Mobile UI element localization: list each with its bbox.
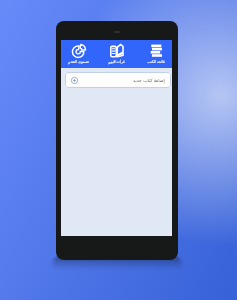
button[interactable]: قائمة الكتب [138, 40, 173, 68]
staticText: قائمة الكتب [147, 59, 165, 64]
button[interactable]: إضافة كتاب جديد [65, 72, 171, 88]
button[interactable]: قرأت اليوم [99, 40, 134, 68]
staticText: مستوى التقدم [68, 59, 89, 64]
staticText: قرأت اليوم [108, 59, 125, 64]
button[interactable]: مستوى التقدم [61, 40, 96, 68]
staticText: إضافة كتاب جديد [133, 77, 165, 83]
